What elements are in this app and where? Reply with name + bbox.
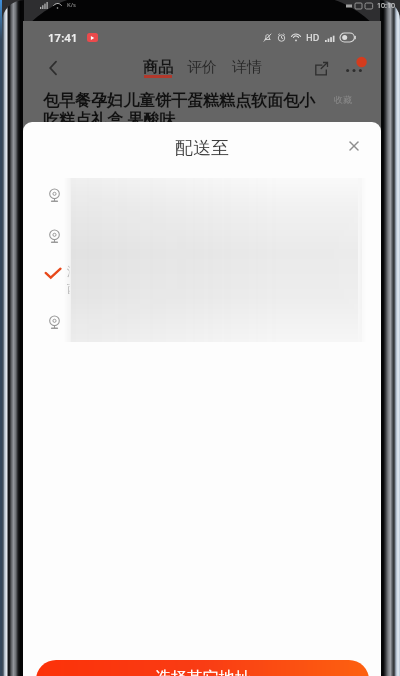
button[interactable]: 选择其它地址 [36,660,369,676]
button[interactable]: 评价 [187,58,217,80]
staticText: 西兴街道江南大道 [67,281,163,296]
staticText: HD [306,31,320,43]
staticText: 10:10 [377,1,395,11]
staticText: 详情 [232,58,262,77]
staticText: 配送至 [175,137,229,160]
button[interactable]: Close [342,134,365,157]
staticText: 收藏 [334,94,352,105]
staticText: 13999999999 [70,328,146,344]
button[interactable]: 详情 [232,58,262,80]
staticText: 17:41 [48,30,78,45]
button[interactable]: More options [342,56,366,80]
staticText: 浙江省杭州市滨江区 [67,263,184,279]
button[interactable]: Share [310,57,332,79]
staticText: 包早餐孕妇儿童饼干蛋糕糕点软面包小吃糕点礼盒 果酸味 [43,91,323,130]
staticText: 商品 [143,58,173,77]
staticText: K/s [67,1,76,9]
staticText: 评价 [187,58,217,77]
button[interactable]: 商品 [143,58,173,80]
button[interactable]: Back [40,55,66,81]
staticText: 选择其它地址 [155,668,251,676]
